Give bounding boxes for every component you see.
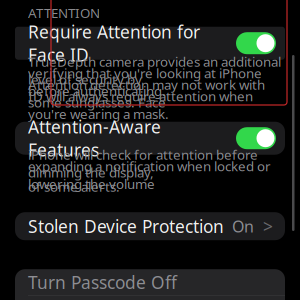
staticText: of some alerts. xyxy=(28,178,120,195)
staticText: Turn Passcode Off xyxy=(28,271,177,294)
button[interactable]: Attention-Aware Features xyxy=(15,122,285,155)
staticText: > xyxy=(263,215,273,238)
staticText: ID will always require attention when yo… xyxy=(28,87,253,123)
staticText: TrueDepth camera provides an additional … xyxy=(28,53,281,88)
staticText: Stolen Device Protection xyxy=(28,215,224,238)
button[interactable]: Turn Passcode Off xyxy=(15,269,285,295)
staticText: iPhone will check for attention before d… xyxy=(28,146,258,181)
staticText: Require Attention for Face ID xyxy=(28,20,200,66)
button[interactable]: Stolen Device Protection xyxy=(15,212,285,240)
staticText: Attention-Aware Features xyxy=(28,115,161,161)
staticText: On xyxy=(232,216,254,237)
staticText: ATTENTION xyxy=(28,4,100,22)
staticText: verifying that you're looking at iPhone … xyxy=(28,64,262,100)
staticText: expanding a notification when locked or … xyxy=(28,157,271,193)
button[interactable]: Require Attention for Face ID xyxy=(15,27,285,60)
staticText: Attention detection may not work with so… xyxy=(28,76,265,111)
